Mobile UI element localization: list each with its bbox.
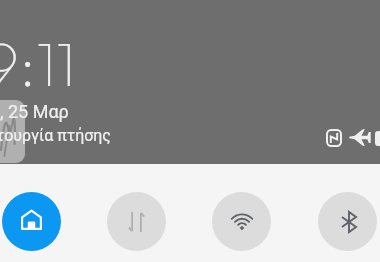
button[interactable]: Wi-Fi, off bbox=[212, 192, 271, 251]
button[interactable]: Bluetooth, off bbox=[318, 192, 377, 251]
staticText: , 25 Μαρ bbox=[0, 101, 69, 122]
staticText: 9:11 bbox=[0, 24, 76, 102]
button[interactable]: Home, on bbox=[2, 192, 61, 251]
other: Airplane mode bbox=[349, 129, 371, 146]
staticText: τουργία πτήσης bbox=[0, 126, 111, 145]
other: NFC enabled bbox=[326, 129, 342, 147]
button[interactable]: Mobile data, off bbox=[107, 192, 166, 251]
